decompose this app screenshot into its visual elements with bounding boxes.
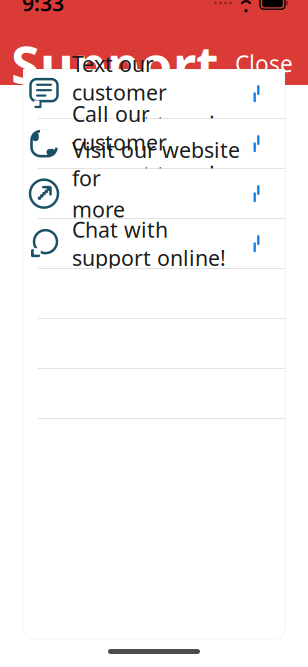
staticText: 9:33 [22,0,64,17]
button[interactable]: Call our customer support team! [23,119,285,168]
button[interactable]: Visit our website for more information! [23,169,285,218]
staticText: Call our customer [72,100,167,156]
staticText: Visit our website for [72,135,240,192]
staticText: more information! [72,195,198,252]
staticText: Chat with support online! [72,215,226,272]
staticText: support team! [72,159,215,188]
staticText: Close [235,48,293,78]
staticText: support team! [72,109,215,138]
staticText: Support [11,29,219,98]
button[interactable]: Chat with support online! [23,219,285,268]
staticText: Text our customer [72,50,167,106]
button[interactable]: Text our customer support team! [23,69,285,118]
button[interactable]: Close [227,40,301,86]
